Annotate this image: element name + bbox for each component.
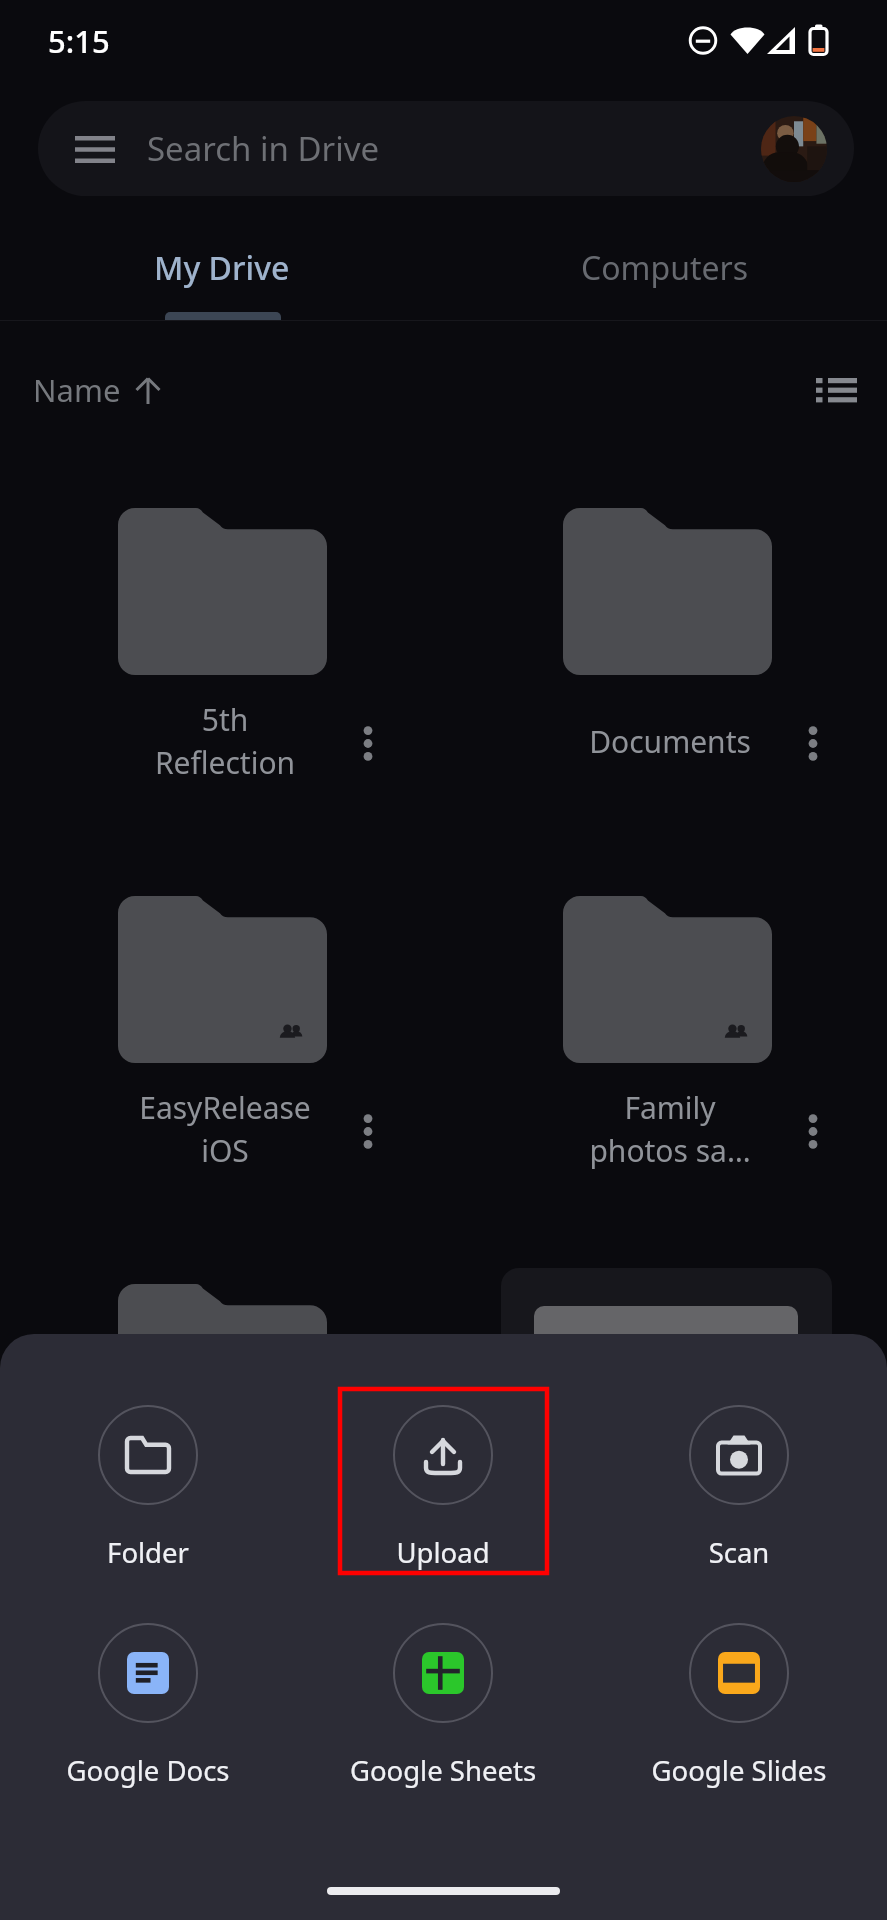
button[interactable]: More options for 5th Reflection — [338, 711, 398, 775]
staticText: Name — [33, 369, 121, 411]
button[interactable]: Folder — [42, 1387, 254, 1575]
staticText: EasyRelease iOS — [95, 1087, 355, 1171]
staticText: Google Docs — [42, 1752, 254, 1789]
button[interactable]: Upload — [337, 1387, 549, 1575]
button[interactable]: Open navigation drawer — [64, 120, 122, 178]
button[interactable]: Google Slides — [633, 1605, 845, 1793]
staticText: Google Sheets — [337, 1752, 549, 1789]
button[interactable]: Scan — [633, 1387, 845, 1575]
button[interactable]: Google Docs — [42, 1605, 254, 1793]
staticText: My Drive — [154, 246, 290, 290]
staticText: Computers — [581, 246, 749, 290]
button[interactable]: More options for EasyRelease iOS — [338, 1099, 398, 1163]
button[interactable]: Google Sheets — [337, 1605, 549, 1793]
staticText: Upload — [337, 1534, 549, 1571]
button[interactable]: Account and settings — [761, 116, 827, 182]
staticText: Google Slides — [633, 1752, 845, 1789]
staticText: Scan — [633, 1534, 845, 1571]
button[interactable]: Switch to list view — [805, 359, 867, 421]
staticText: Documents — [540, 721, 800, 762]
button[interactable]: More options for Documents — [783, 711, 843, 775]
staticText: Family photos sa… — [540, 1087, 800, 1171]
staticText: Search in Drive — [147, 126, 380, 171]
button[interactable] — [543, 872, 833, 1152]
staticText: 5:15 — [48, 20, 110, 62]
button[interactable]: Open navigation drawer — [38, 101, 854, 196]
button[interactable] — [543, 484, 833, 764]
button[interactable]: Name — [33, 369, 161, 411]
button[interactable] — [98, 484, 388, 764]
button[interactable] — [98, 872, 388, 1152]
staticText: Folder — [42, 1534, 254, 1571]
button[interactable]: More options for Family photos sa… — [783, 1099, 843, 1163]
button[interactable]: Computers — [443, 218, 887, 321]
staticText: 5th Reflection — [95, 699, 355, 783]
button[interactable]: My Drive — [0, 218, 443, 321]
